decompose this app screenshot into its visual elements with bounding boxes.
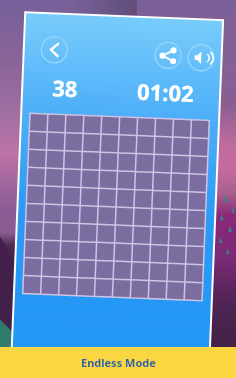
button[interactable]: Share	[153, 40, 183, 70]
staticText: 38	[52, 72, 79, 101]
button[interactable]: Back	[39, 35, 69, 65]
staticText: 01:02	[137, 76, 195, 106]
staticText: Endless Mode	[81, 355, 156, 370]
button[interactable]: Endless Mode	[0, 347, 236, 378]
button[interactable]	[22, 112, 210, 301]
button[interactable]: Sound	[186, 43, 216, 73]
